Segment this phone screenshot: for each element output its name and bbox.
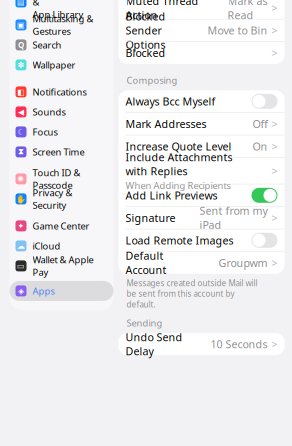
- button[interactable]: ▤: [9, 0, 113, 15]
- staticText: When Adding Recipients: [125, 179, 230, 192]
- staticText: Sending: [126, 317, 162, 329]
- staticText: Undo Send Delay: [125, 330, 182, 358]
- staticText: Include Attachments with Replies: [125, 150, 232, 178]
- button[interactable]: ◀: [9, 102, 113, 122]
- staticText: >: [271, 337, 277, 351]
- staticText: Multitasking & Gestures: [32, 12, 93, 37]
- staticText: ◀: [18, 107, 24, 116]
- staticText: >: [271, 1, 277, 15]
- button[interactable]: ▭: [9, 256, 113, 276]
- staticText: Q: [18, 40, 24, 50]
- staticText: Add Link Previews: [125, 188, 217, 202]
- button[interactable]: ☁: [9, 236, 113, 256]
- staticText: ☁: [17, 241, 25, 250]
- button[interactable]: Always Bcc Myself: [118, 90, 284, 112]
- staticText: Move to Bin: [207, 23, 267, 37]
- button[interactable]: Signature: [118, 207, 284, 229]
- button[interactable]: ☾: [9, 122, 113, 142]
- staticText: ▤: [17, 0, 25, 6]
- button[interactable]: Undo Send Delay: [118, 333, 284, 355]
- staticText: Sounds: [32, 106, 65, 118]
- button[interactable]: ✽: [9, 55, 113, 75]
- staticText: ⧗: [18, 148, 24, 156]
- staticText: >: [271, 23, 277, 37]
- staticText: Default Account: [125, 249, 166, 277]
- staticText: >: [271, 117, 277, 131]
- button[interactable]: Muted Thread Action: [118, 0, 284, 19]
- staticText: >: [271, 139, 277, 153]
- staticText: >: [271, 256, 277, 270]
- button[interactable]: ◈: [9, 281, 113, 301]
- button[interactable]: Blocked Sender Options: [118, 19, 284, 41]
- staticText: Notifications: [32, 86, 86, 98]
- staticText: App Library: [32, 8, 83, 20]
- button[interactable]: Blocked: [118, 42, 284, 64]
- staticText: Sent from my iPad: [199, 204, 267, 232]
- button[interactable]: ✺: [9, 169, 113, 189]
- staticText: Increase Quote Level: [125, 139, 231, 153]
- button[interactable]: Q: [9, 35, 113, 55]
- staticText: Always Bcc Myself: [125, 94, 215, 108]
- staticText: Groupwm: [218, 256, 267, 270]
- staticText: ◈: [18, 286, 24, 295]
- button[interactable]: ✦: [9, 216, 113, 236]
- staticText: Off: [252, 117, 267, 131]
- button[interactable]: Add Link Previews: [118, 184, 284, 206]
- staticText: Screen Time: [32, 146, 84, 158]
- button[interactable]: ◧: [9, 82, 113, 102]
- button[interactable]: Mark Addresses: [118, 113, 284, 135]
- staticText: Blocked: [125, 46, 165, 60]
- staticText: Blocked Sender Options: [125, 9, 165, 52]
- staticText: iCloud: [32, 240, 60, 252]
- staticText: Load Remote Images: [125, 233, 233, 247]
- staticText: On: [252, 139, 267, 153]
- button[interactable]: ⧗: [9, 142, 113, 162]
- staticText: Home Screen &: [32, 0, 90, 8]
- staticText: Touch ID & Passcode: [32, 166, 80, 191]
- staticText: >: [271, 164, 277, 178]
- button[interactable]: Increase Quote Level: [118, 135, 284, 157]
- staticText: ✦: [17, 221, 24, 230]
- staticText: ☾: [17, 127, 24, 136]
- staticText: Signature: [125, 211, 175, 225]
- button[interactable]: ✋: [9, 189, 113, 209]
- staticText: ✋: [16, 194, 26, 203]
- staticText: Focus: [32, 126, 57, 138]
- staticText: Wallpaper: [32, 59, 75, 71]
- staticText: ▭: [17, 261, 25, 270]
- staticText: Mark as Read: [227, 0, 267, 22]
- staticText: ▣: [17, 20, 25, 29]
- staticText: Composing: [126, 74, 177, 86]
- button[interactable]: Default Account: [118, 252, 284, 274]
- staticText: ✺: [17, 174, 24, 183]
- staticText: Mark Addresses: [125, 117, 206, 131]
- staticText: >: [271, 46, 277, 60]
- staticText: 10 Seconds: [210, 337, 267, 351]
- button[interactable]: Include Attachments with Replies: [118, 158, 284, 184]
- button[interactable]: ▣: [9, 15, 113, 35]
- button[interactable]: Load Remote Images: [118, 229, 284, 251]
- staticText: Privacy & Security: [32, 186, 72, 211]
- staticText: Muted Thread Action: [125, 0, 198, 22]
- staticText: Messages created outside Mail will be se…: [126, 278, 257, 310]
- staticText: ◧: [17, 87, 25, 96]
- staticText: Apps: [32, 285, 54, 297]
- staticText: Wallet & Apple Pay: [32, 253, 93, 278]
- staticText: ✽: [17, 60, 24, 69]
- staticText: Search: [32, 39, 61, 51]
- staticText: Game Center: [32, 220, 89, 232]
- staticText: >: [271, 211, 277, 225]
